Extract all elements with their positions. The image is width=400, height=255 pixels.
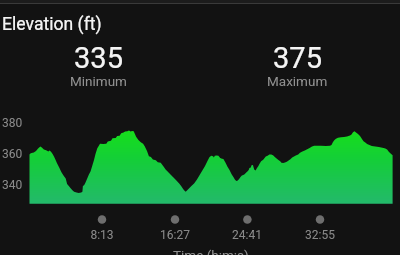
staticText: 32:55 bbox=[303, 228, 337, 242]
staticText: 335 bbox=[74, 41, 123, 75]
staticText: 340 bbox=[2, 178, 23, 192]
staticText: Minimum bbox=[70, 73, 127, 89]
other: Elevation chart bbox=[0, 0, 400, 255]
staticText: 380 bbox=[2, 116, 23, 130]
staticText: 375 bbox=[273, 41, 322, 75]
staticText: 360 bbox=[2, 147, 23, 161]
staticText: Maximum bbox=[267, 73, 328, 89]
button[interactable]: Elevation (ft) bbox=[0, 0, 400, 255]
staticText: 24:41 bbox=[230, 228, 264, 242]
staticText: 16:27 bbox=[158, 228, 192, 242]
staticText: 8:13 bbox=[88, 228, 116, 242]
button[interactable]: 335 bbox=[48, 41, 148, 91]
button[interactable]: 375 bbox=[247, 41, 347, 91]
staticText: Time (h:m:s) bbox=[173, 247, 249, 255]
staticText: Elevation (ft) bbox=[2, 14, 102, 35]
